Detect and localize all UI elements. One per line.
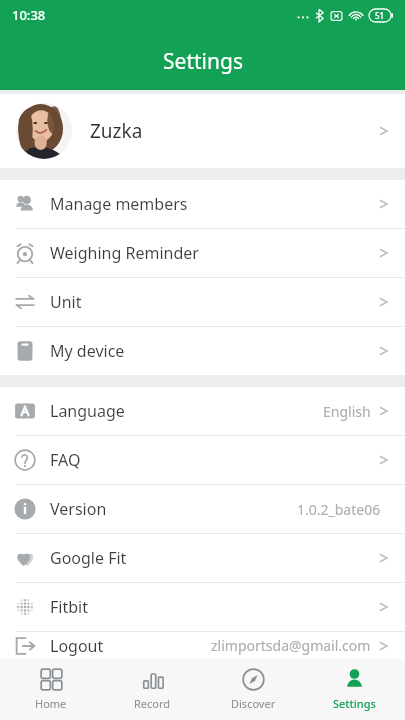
button[interactable]: Weighing Reminder <box>0 229 405 277</box>
staticText: 1.0.2_bate06 <box>297 500 381 519</box>
staticText: Zuzka <box>90 118 143 144</box>
button[interactable]: Settings <box>304 659 405 720</box>
staticText: Settings <box>333 696 376 711</box>
button[interactable]: Fitbit <box>0 583 405 631</box>
staticText: English <box>323 402 371 421</box>
button[interactable]: Zuzka <box>0 94 405 168</box>
button[interactable]: Logout <box>0 632 405 659</box>
staticText: Record <box>134 696 171 711</box>
staticText: 51 <box>375 10 385 21</box>
staticText: Unit <box>50 291 82 313</box>
button[interactable]: FAQ <box>0 436 405 484</box>
button[interactable]: My device <box>0 327 405 375</box>
button[interactable]: Discover <box>203 659 304 720</box>
staticText: Weighing Reminder <box>50 242 199 264</box>
button[interactable]: Version <box>0 485 405 533</box>
staticText: 10:38 <box>12 6 46 24</box>
staticText: Language <box>50 400 125 422</box>
staticText: Manage members <box>50 193 188 215</box>
button[interactable]: Manage members <box>0 180 405 228</box>
button[interactable]: Record <box>102 659 203 720</box>
staticText: Logout <box>50 635 104 657</box>
staticText: Settings <box>163 47 243 76</box>
staticText: Discover <box>231 696 276 711</box>
button[interactable]: Home <box>0 659 102 720</box>
staticText: Google Fit <box>50 547 127 569</box>
staticText: Version <box>50 498 107 520</box>
staticText: Fitbit <box>50 596 88 618</box>
staticText: My device <box>50 340 125 362</box>
staticText: FAQ <box>50 449 81 471</box>
button[interactable]: Language <box>0 387 405 435</box>
button[interactable]: Google Fit <box>0 534 405 582</box>
staticText: Home <box>35 696 67 711</box>
button[interactable]: Unit <box>0 278 405 326</box>
staticText: zlimportsda@gmail.com <box>211 636 371 655</box>
